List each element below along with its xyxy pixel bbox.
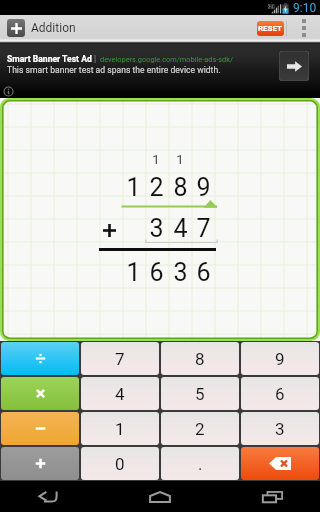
staticText: 3 — [149, 214, 164, 242]
staticText: 0 — [115, 454, 125, 474]
staticText: 1 — [152, 152, 160, 166]
staticText: This smart banner test ad spans the enti… — [7, 65, 221, 75]
staticText: 6 — [149, 258, 164, 286]
button[interactable]: 1 — [81, 412, 159, 445]
staticText: 4 — [115, 384, 125, 404]
staticText: 9:10 — [293, 1, 317, 15]
button[interactable]: Back — [0, 481, 106, 512]
staticText: 7 — [115, 349, 125, 369]
staticText: | — [94, 54, 97, 64]
button[interactable]: Smart Banner Test Ad — [0, 44, 320, 98]
button[interactable]: Divide — [1, 342, 79, 375]
button[interactable]: RESET — [257, 21, 284, 36]
staticText: 7 — [196, 214, 211, 242]
staticText: 6 — [196, 258, 211, 286]
staticText: . — [198, 454, 203, 474]
staticText: 3 — [173, 258, 188, 286]
button[interactable]: Open advertisement — [279, 51, 309, 81]
staticText: 1 — [126, 258, 141, 286]
staticText: 4 — [173, 214, 188, 242]
staticText: Addition — [31, 21, 76, 35]
staticText: 5 — [195, 384, 205, 404]
staticText: 8 — [173, 173, 188, 201]
staticText: Smart Banner Test Ad — [7, 54, 92, 64]
staticText: 9 — [275, 349, 285, 369]
button[interactable]: Subtract — [1, 412, 79, 445]
button[interactable]: 8 — [161, 342, 239, 375]
staticText: 9 — [196, 173, 211, 201]
button[interactable]: 9 — [241, 342, 319, 375]
button[interactable]: 4 — [81, 377, 159, 410]
staticText: 1 — [176, 152, 184, 166]
staticText: 1 — [115, 419, 125, 439]
button[interactable]: 7 — [81, 342, 159, 375]
button[interactable]: 2 — [161, 412, 239, 445]
staticText: 2 — [195, 419, 205, 439]
staticText: RESET — [258, 24, 283, 33]
staticText: 1 — [126, 173, 141, 201]
button[interactable]: 0 — [81, 447, 159, 480]
staticText: 3 — [275, 419, 285, 439]
staticText: 8 — [195, 349, 205, 369]
staticText: developers.google.com/mobile-ads-sdk/ — [100, 55, 234, 64]
button[interactable]: Home — [106, 481, 213, 512]
button[interactable]: 3 — [241, 412, 319, 445]
button[interactable]: 6 — [241, 377, 319, 410]
button[interactable]: Multiply — [1, 377, 79, 410]
staticText: 6 — [275, 384, 285, 404]
button[interactable]: Recent apps — [213, 481, 320, 512]
button[interactable]: 5 — [161, 377, 239, 410]
button[interactable]: Add — [1, 447, 79, 480]
button[interactable]: . — [161, 447, 239, 480]
staticText: 2 — [149, 173, 164, 201]
button[interactable]: More options — [287, 15, 320, 41]
button[interactable]: Delete — [241, 447, 319, 480]
